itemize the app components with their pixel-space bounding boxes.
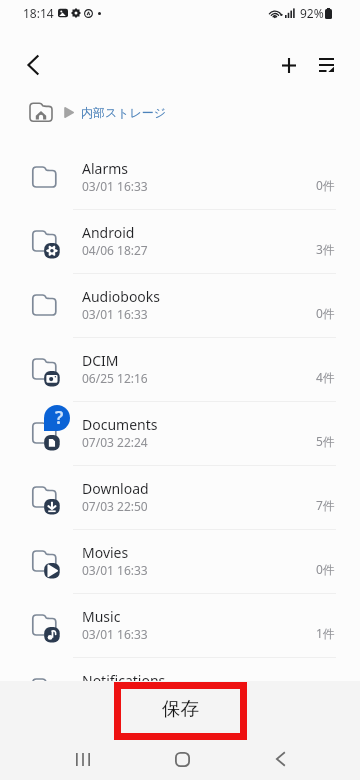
button[interactable]: Download: [0, 466, 360, 530]
staticText: 0件: [316, 305, 335, 321]
staticText: 04/06 18:27: [82, 242, 148, 258]
staticText: 4件: [316, 369, 335, 385]
staticText: 7件: [316, 497, 335, 513]
staticText: Movies: [82, 543, 129, 562]
staticText: 内部ストレージ: [81, 105, 167, 120]
button[interactable]: Android: [0, 210, 360, 274]
staticText: 92%: [300, 5, 324, 21]
staticText: Android: [82, 223, 135, 242]
staticText: 03/01 16:33: [82, 690, 148, 706]
staticText: Documents: [82, 415, 158, 434]
button[interactable]: DCIM: [0, 338, 360, 402]
button[interactable]: 保存: [0, 681, 360, 738]
staticText: 03/01 16:33: [82, 562, 148, 578]
staticText: 03/01 16:33: [82, 306, 148, 322]
staticText: 0件: [316, 561, 335, 577]
button[interactable]: Home: [158, 738, 206, 780]
button[interactable]: 内部ストレージ: [24, 98, 172, 126]
staticText: ?: [55, 405, 64, 430]
staticText: DCIM: [82, 351, 119, 370]
staticText: 07/03 22:24: [82, 434, 148, 450]
button[interactable]: Audiobooks: [0, 274, 360, 338]
staticText: Notifications: [82, 671, 166, 690]
staticText: 5件: [316, 433, 335, 449]
button[interactable]: Back: [13, 45, 53, 85]
button[interactable]: Recent apps: [59, 738, 107, 780]
staticText: 03/01 16:33: [82, 626, 148, 642]
staticText: Music: [82, 607, 121, 626]
button[interactable]: Add: [269, 45, 309, 85]
button[interactable]: Back: [256, 738, 304, 780]
button[interactable]: Sort: [306, 45, 346, 85]
staticText: 18:14: [23, 5, 54, 21]
staticText: Download: [82, 479, 149, 498]
staticText: 07/03 22:50: [82, 498, 148, 514]
staticText: 0件: [316, 177, 335, 193]
staticText: Audiobooks: [82, 287, 161, 306]
button[interactable]: Alarms: [0, 146, 360, 210]
button[interactable]: Documents: [0, 402, 360, 466]
button[interactable]: Notifications: [0, 658, 360, 722]
button[interactable]: Movies: [0, 530, 360, 594]
staticText: 保存: [162, 697, 199, 720]
staticText: 06/25 12:16: [82, 370, 148, 386]
staticText: Alarms: [82, 159, 128, 178]
staticText: 03/01 16:33: [82, 178, 148, 194]
staticText: 1件: [316, 625, 335, 641]
button[interactable]: Music: [0, 594, 360, 658]
staticText: 3件: [316, 241, 335, 257]
